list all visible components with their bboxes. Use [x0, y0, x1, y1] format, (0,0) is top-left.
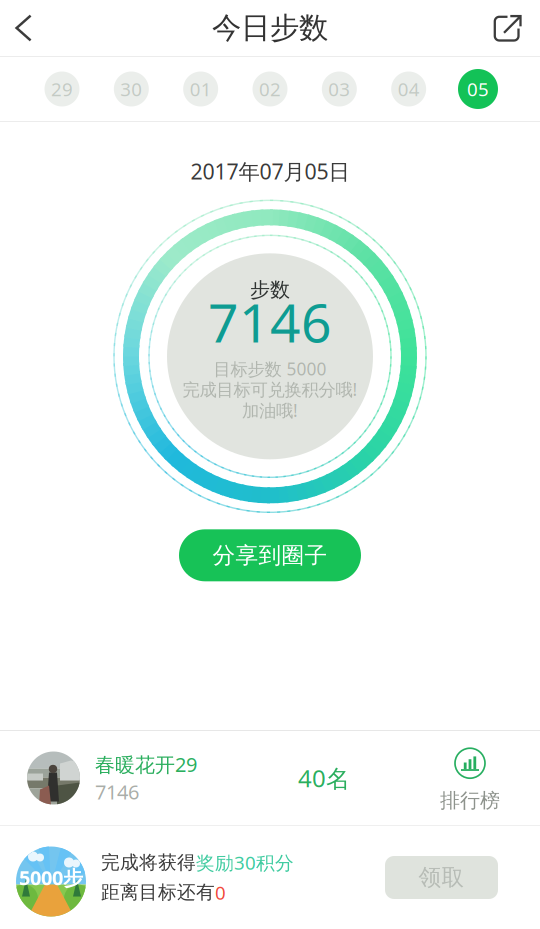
button[interactable]: 春暖花开29 [0, 731, 540, 825]
button[interactable]: 29 [34, 65, 90, 113]
staticText: 02 [259, 77, 281, 101]
button[interactable]: 05 [450, 65, 506, 113]
staticText: 2017年07月05日 [190, 157, 349, 185]
button[interactable]: 01 [173, 65, 229, 113]
staticText: 7146 [208, 286, 332, 357]
staticText: 今日步数 [212, 10, 328, 46]
staticText: 5000步 [19, 864, 83, 891]
staticText: 30 [120, 77, 142, 101]
staticText: 完成目标可兑换积分哦! [182, 378, 357, 401]
staticText: 04 [398, 77, 420, 101]
staticText: 排行榜 [440, 788, 500, 813]
button[interactable]: 02 [242, 65, 298, 113]
staticText: 完成将获得 [101, 851, 196, 874]
staticText: 春暖花开29 [95, 751, 197, 777]
staticText: 步数 [250, 277, 290, 302]
staticText: 03 [328, 77, 350, 101]
button[interactable]: Share [476, 0, 540, 56]
staticText: 领取 [418, 864, 464, 891]
staticText: 目标步数 5000 [213, 357, 326, 380]
staticText: 29 [51, 77, 73, 101]
staticText: 40名 [298, 762, 350, 794]
staticText: 加油哦! [242, 399, 298, 422]
staticText: 01 [190, 77, 212, 101]
staticText: 分享到圈子 [212, 541, 327, 569]
staticText: 距离目标还有 [101, 881, 215, 904]
button[interactable]: 领取 [385, 856, 498, 899]
button[interactable]: 分享到圈子 [179, 529, 361, 581]
staticText: 奖励30积分 [196, 850, 294, 875]
button[interactable]: 30 [103, 65, 159, 113]
button[interactable]: Back [0, 0, 47, 56]
staticText: 7146 [95, 778, 139, 805]
staticText: 0 [215, 880, 226, 905]
button[interactable]: 03 [311, 65, 367, 113]
button[interactable]: 04 [381, 65, 437, 113]
staticText: 05 [467, 77, 489, 101]
